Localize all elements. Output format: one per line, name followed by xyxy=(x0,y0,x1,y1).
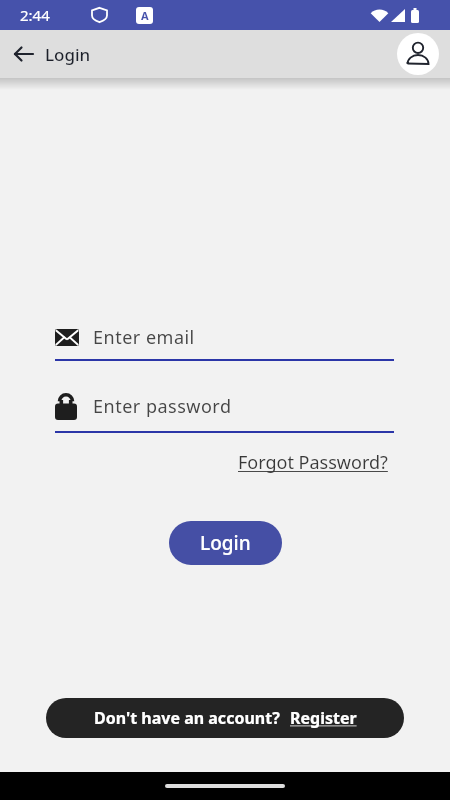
staticText: Enter email xyxy=(93,325,195,349)
staticText: Enter password xyxy=(93,394,232,419)
button[interactable]: Don't have an account? xyxy=(46,698,404,738)
button[interactable]: Forgot Password? xyxy=(238,450,388,475)
button[interactable]: Enter password xyxy=(55,393,232,420)
staticText: 2:44 xyxy=(20,5,50,25)
button[interactable] xyxy=(15,47,33,61)
staticText: Login xyxy=(200,530,251,556)
button[interactable]: Enter email xyxy=(55,325,195,349)
button[interactable]: Login xyxy=(169,521,282,565)
staticText: Login xyxy=(45,43,91,66)
button[interactable] xyxy=(397,33,439,75)
staticText: Don't have an account? xyxy=(94,707,280,729)
staticText: A xyxy=(141,8,149,23)
button[interactable]: Register xyxy=(290,707,357,729)
